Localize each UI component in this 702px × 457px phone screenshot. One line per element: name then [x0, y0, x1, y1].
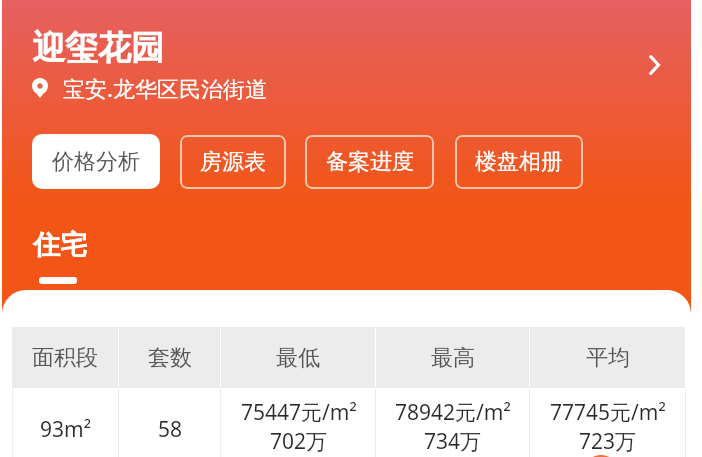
button[interactable]: Consult [584, 455, 618, 457]
button[interactable]: 备案进度 [305, 135, 434, 189]
button[interactable]: 75447元/m² [221, 389, 376, 457]
staticText: 面积段 [32, 344, 98, 372]
staticText: 套数 [148, 344, 192, 372]
staticText: 房源表 [200, 148, 266, 176]
staticText: 备案进度 [326, 148, 414, 176]
button[interactable]: 住宅 [33, 228, 87, 284]
staticText: 楼盘相册 [475, 148, 563, 176]
button[interactable]: 78942元/m² [376, 389, 530, 457]
staticText: 最低 [276, 344, 320, 372]
button[interactable]: 房源表 [180, 135, 286, 189]
button[interactable]: Open project detail [633, 44, 675, 86]
staticText: 住宅 [33, 228, 87, 262]
staticText: 迎玺花园 [32, 27, 164, 69]
staticText: 77745元/m² [550, 398, 666, 427]
staticText: 78942元/m² [395, 398, 511, 427]
staticText: 宝安.龙华区民治街道 [63, 73, 267, 103]
staticText: 723万 [579, 427, 637, 456]
button[interactable]: 迎玺花园 [32, 27, 164, 69]
staticText: 最高 [431, 344, 475, 372]
staticText: 价格分析 [52, 148, 140, 176]
staticText: 75447元/m² [241, 398, 357, 427]
button[interactable]: 宝安.龙华区民治街道 [32, 73, 267, 103]
button[interactable]: 楼盘相册 [455, 135, 583, 189]
staticText: 93m² [40, 415, 92, 444]
staticText: 702万 [270, 427, 328, 456]
button[interactable]: 77745元/m² [530, 389, 686, 457]
staticText: 平均 [586, 344, 630, 372]
button[interactable]: 价格分析 [32, 134, 160, 189]
button[interactable]: 93m² [12, 389, 119, 457]
staticText: 58 [158, 415, 183, 444]
staticText: 734万 [424, 427, 482, 456]
button[interactable]: 58 [119, 389, 221, 457]
